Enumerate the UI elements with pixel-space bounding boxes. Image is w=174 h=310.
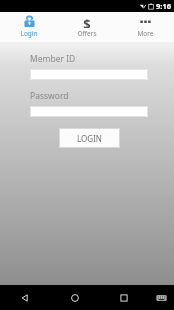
- button[interactable]: More: [116, 12, 174, 42]
- button[interactable]: [30, 69, 148, 80]
- staticText: Login: [20, 29, 38, 38]
- staticText: More: [137, 29, 154, 38]
- staticText: Password: [30, 90, 69, 102]
- button[interactable]: Back: [0, 285, 50, 310]
- staticText: 9:16: [156, 1, 171, 11]
- button[interactable]: Home: [50, 285, 99, 310]
- button[interactable]: Offers: [58, 12, 116, 42]
- other: More: [139, 15, 152, 28]
- staticText: Member ID: [30, 53, 76, 65]
- other: Login: [24, 15, 35, 28]
- staticText: $: [83, 15, 91, 28]
- button[interactable]: [30, 106, 148, 117]
- button[interactable]: Recent apps: [99, 285, 148, 310]
- staticText: LOGIN: [77, 133, 102, 144]
- button[interactable]: LOGIN: [59, 128, 120, 148]
- staticText: Offers: [77, 29, 97, 38]
- button[interactable]: Login: [0, 12, 58, 42]
- other: Offers: [81, 15, 93, 28]
- button[interactable]: Keyboard: [148, 285, 174, 310]
